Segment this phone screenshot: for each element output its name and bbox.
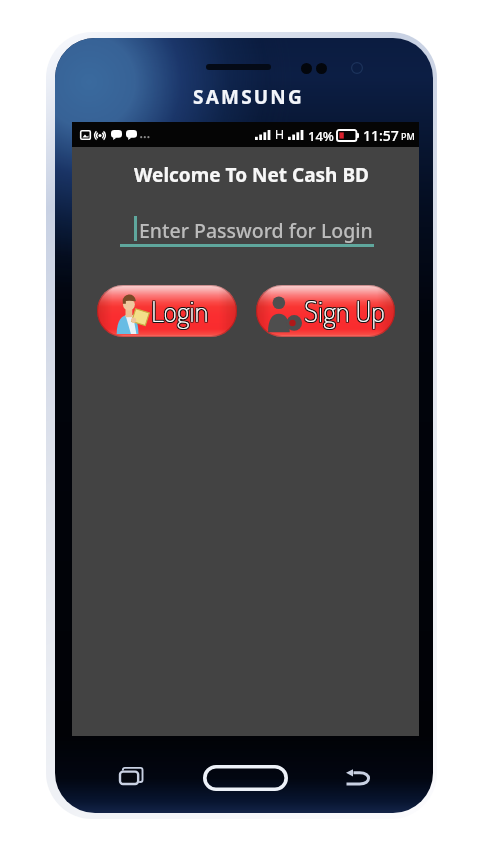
button[interactable]: Login <box>97 285 237 337</box>
staticText: Sign Up <box>305 293 386 330</box>
staticText: Sign Up <box>305 291 386 328</box>
staticText: Login <box>151 291 209 328</box>
staticText: Login <box>151 293 209 330</box>
staticText: Welcome To Net Cash BD <box>134 162 369 188</box>
staticText: PM <box>401 130 415 142</box>
staticText: Sign Up <box>304 292 385 329</box>
staticText: Login <box>152 291 210 328</box>
staticText: 11:57 <box>363 126 399 145</box>
button[interactable]: Recents <box>112 760 152 792</box>
staticText: Sign Up <box>303 292 384 329</box>
staticText: Sign Up <box>305 292 386 329</box>
staticText: SAMSUNG <box>193 84 304 110</box>
staticText: Sign Up <box>303 293 384 330</box>
staticText: Login <box>152 293 210 330</box>
staticText: Login <box>152 292 210 329</box>
staticText: Login <box>150 292 208 329</box>
button[interactable]: Back <box>340 762 378 792</box>
staticText: Login <box>150 291 208 328</box>
staticText: 14% <box>308 127 334 145</box>
staticText: Sign Up <box>304 293 385 330</box>
staticText: Login <box>151 292 209 329</box>
staticText: Login <box>150 293 208 330</box>
button[interactable]: Home <box>203 765 288 791</box>
staticText: Sign Up <box>303 291 384 328</box>
staticText: Enter Password for Login <box>139 217 373 244</box>
staticText: Sign Up <box>304 291 385 328</box>
button[interactable]: Sign Up <box>256 285 395 337</box>
